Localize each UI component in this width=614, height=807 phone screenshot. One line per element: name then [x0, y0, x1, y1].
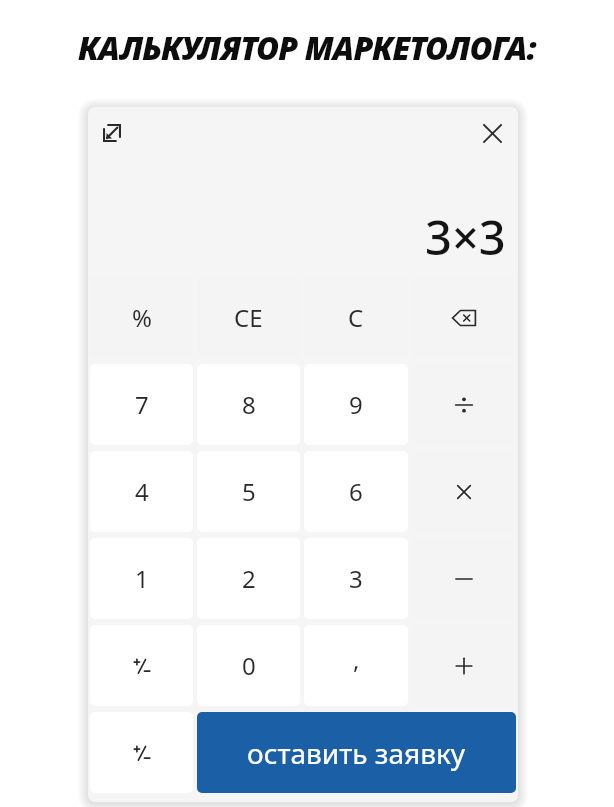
button[interactable]: 1 [90, 538, 193, 619]
staticText: 1 [135, 562, 149, 595]
button[interactable]: 6 [304, 451, 408, 532]
button[interactable]: Plus [412, 625, 516, 706]
button[interactable]: 3 [304, 538, 408, 619]
button[interactable]: 8 [197, 364, 300, 445]
button[interactable]: , [304, 625, 408, 706]
staticText: 4 [135, 475, 149, 508]
button[interactable]: 0 [197, 625, 300, 706]
staticText: 3×3 [425, 205, 506, 269]
button[interactable]: CE [197, 277, 300, 358]
button[interactable]: Collapse window [94, 115, 130, 151]
staticText: 9 [349, 388, 363, 421]
button[interactable]: Multiply [412, 451, 516, 532]
button[interactable]: 2 [197, 538, 300, 619]
button[interactable]: C [304, 277, 408, 358]
staticText: 8 [242, 388, 256, 421]
button[interactable]: Plus minus [90, 625, 193, 706]
button[interactable]: 5 [197, 451, 300, 532]
staticText: % [132, 301, 152, 334]
staticText: 7 [135, 388, 149, 421]
staticText: , [353, 643, 360, 676]
button[interactable]: Divide [412, 364, 516, 445]
button[interactable]: Minus [412, 538, 516, 619]
staticText: 6 [349, 475, 363, 508]
button[interactable]: оставить заявку [197, 712, 516, 793]
button[interactable]: Plus minus [90, 712, 193, 793]
staticText: 0 [242, 649, 256, 682]
button[interactable]: % [90, 277, 193, 358]
button[interactable]: 7 [90, 364, 193, 445]
staticText: C [348, 301, 364, 334]
staticText: 2 [242, 562, 256, 595]
button[interactable]: 9 [304, 364, 408, 445]
button[interactable]: Close [474, 115, 510, 151]
staticText: CE [234, 301, 263, 334]
staticText: 3 [349, 562, 363, 595]
staticText: оставить заявку [247, 734, 466, 772]
staticText: КАЛЬКУЛЯТОР МАРКЕТОЛОГА: [78, 26, 536, 70]
staticText: 5 [242, 475, 256, 508]
button[interactable]: 4 [90, 451, 193, 532]
button[interactable]: Backspace [412, 277, 516, 358]
